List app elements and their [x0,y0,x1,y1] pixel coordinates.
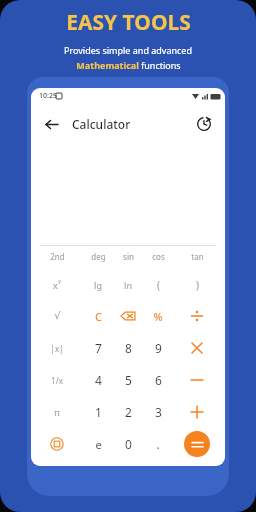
button[interactable]: Divide [180,303,214,329]
button[interactable]: Unit converter [40,431,74,457]
button[interactable]: % [141,303,175,329]
button[interactable]: 3 [141,399,175,425]
button[interactable]: cos [141,243,175,269]
button[interactable]: History [191,111,217,137]
staticText: 2 [125,404,132,420]
staticText: 5 [125,372,132,388]
button[interactable]: ( [141,272,175,298]
button[interactable]: sin [111,243,145,269]
staticText: x [53,279,58,291]
staticText: % [153,309,163,324]
staticText: Mathematical functions [76,59,181,71]
staticText: 6 [155,372,162,388]
staticText: tan [191,251,204,262]
button[interactable]: x [40,272,74,298]
button[interactable]: ) [180,272,214,298]
staticText: Calculator [72,116,131,132]
staticText: |x| [50,343,64,354]
button[interactable]: C [81,303,115,329]
button[interactable]: 9 [141,335,175,361]
button[interactable]: 6 [141,367,175,393]
staticText: EASY TOOLS [66,8,191,37]
button[interactable]: |x| [40,335,74,361]
staticText: sin [123,251,134,262]
button[interactable]: 2nd [40,243,74,269]
staticText: C [95,309,102,324]
staticText: 3 [155,404,162,420]
staticText: ( [157,278,160,292]
button[interactable]: Back [37,110,65,138]
staticText: ) [196,278,199,292]
staticText: 2nd [50,251,65,262]
button[interactable]: Plus [180,399,214,425]
button[interactable]: Minus [180,367,214,393]
staticText: deg [91,251,106,262]
button[interactable]: 5 [111,367,145,393]
button[interactable]: 0 [111,431,145,457]
button[interactable]: lg [81,272,115,298]
button[interactable]: 8 [111,335,145,361]
button[interactable]: e [81,431,115,457]
button[interactable]: 7 [81,335,115,361]
staticText: Provides simple and advanced [64,44,192,56]
button[interactable]: 1/x [40,367,74,393]
staticText: 8 [125,340,132,356]
staticText: 1 [95,404,102,420]
staticText: ln [124,279,132,291]
button[interactable]: ln [111,272,145,298]
button[interactable]: π [40,399,74,425]
staticText: 9 [155,340,162,356]
staticText: 4 [95,372,102,388]
staticText: cos [152,251,165,262]
button[interactable]: Equals [184,431,210,457]
button[interactable]: 2 [111,399,145,425]
button[interactable]: √ [40,303,74,329]
staticText: e [95,437,102,452]
button[interactable]: Multiply [180,335,214,361]
staticText: 1/x [51,375,63,386]
button[interactable]: Backspace [111,303,145,329]
staticText: 7 [95,340,102,356]
button[interactable]: 1 [81,399,115,425]
staticText: lg [94,279,102,291]
staticText: 0 [125,436,132,452]
staticText: y [58,277,62,285]
button[interactable]: 4 [81,367,115,393]
button[interactable]: deg [81,243,115,269]
button[interactable]: . [141,431,175,457]
staticText: √ [54,310,61,322]
button[interactable]: tan [180,243,214,269]
staticText: π [54,406,60,418]
staticText: . [156,436,160,452]
staticText: 10:25 [39,91,57,101]
